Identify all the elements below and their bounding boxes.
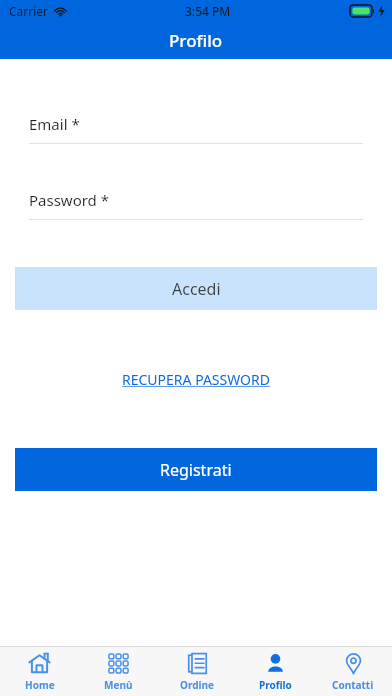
staticText: Menù xyxy=(104,678,133,692)
button[interactable]: Menu xyxy=(79,647,158,696)
button[interactable]: Orders xyxy=(158,647,236,696)
staticText: Email * xyxy=(29,114,80,134)
other: Orders xyxy=(186,652,209,675)
staticText: Contatti xyxy=(332,678,374,692)
staticText: Ordine xyxy=(180,678,214,692)
staticText: Registrati xyxy=(160,459,232,481)
other: Profile xyxy=(264,652,287,675)
staticText: Carrier xyxy=(9,3,49,19)
button[interactable]: Accedi xyxy=(15,267,377,310)
other: Home xyxy=(28,652,51,675)
staticText: Profilo xyxy=(259,678,292,692)
staticText: Password * xyxy=(29,190,110,210)
other: Menu xyxy=(107,652,130,675)
button[interactable]: Home xyxy=(0,647,79,696)
button[interactable]: RECUPERA PASSWORD xyxy=(116,367,276,392)
staticText: Accedi xyxy=(172,278,221,300)
staticText: RECUPERA PASSWORD xyxy=(122,370,270,389)
other: Contacts xyxy=(342,652,365,675)
button[interactable]: Contacts xyxy=(314,647,392,696)
staticText: Profilo xyxy=(169,29,223,52)
staticText: Home xyxy=(25,678,55,692)
button[interactable]: Registrati xyxy=(15,448,377,491)
staticText: 3:54 PM xyxy=(185,3,231,19)
button[interactable]: Profile xyxy=(236,647,314,696)
